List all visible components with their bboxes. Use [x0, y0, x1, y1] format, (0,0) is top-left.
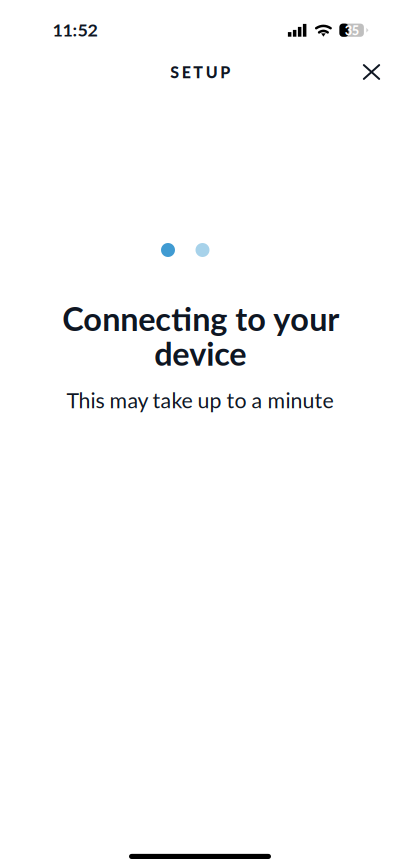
staticText: Connecting to your device	[62, 299, 338, 373]
staticText: SETUP	[170, 62, 230, 82]
staticText: 35	[345, 22, 359, 38]
staticText: 11:52	[52, 19, 97, 40]
staticText: This may take up to a minute	[66, 387, 333, 413]
button[interactable]: Close	[349, 50, 393, 94]
